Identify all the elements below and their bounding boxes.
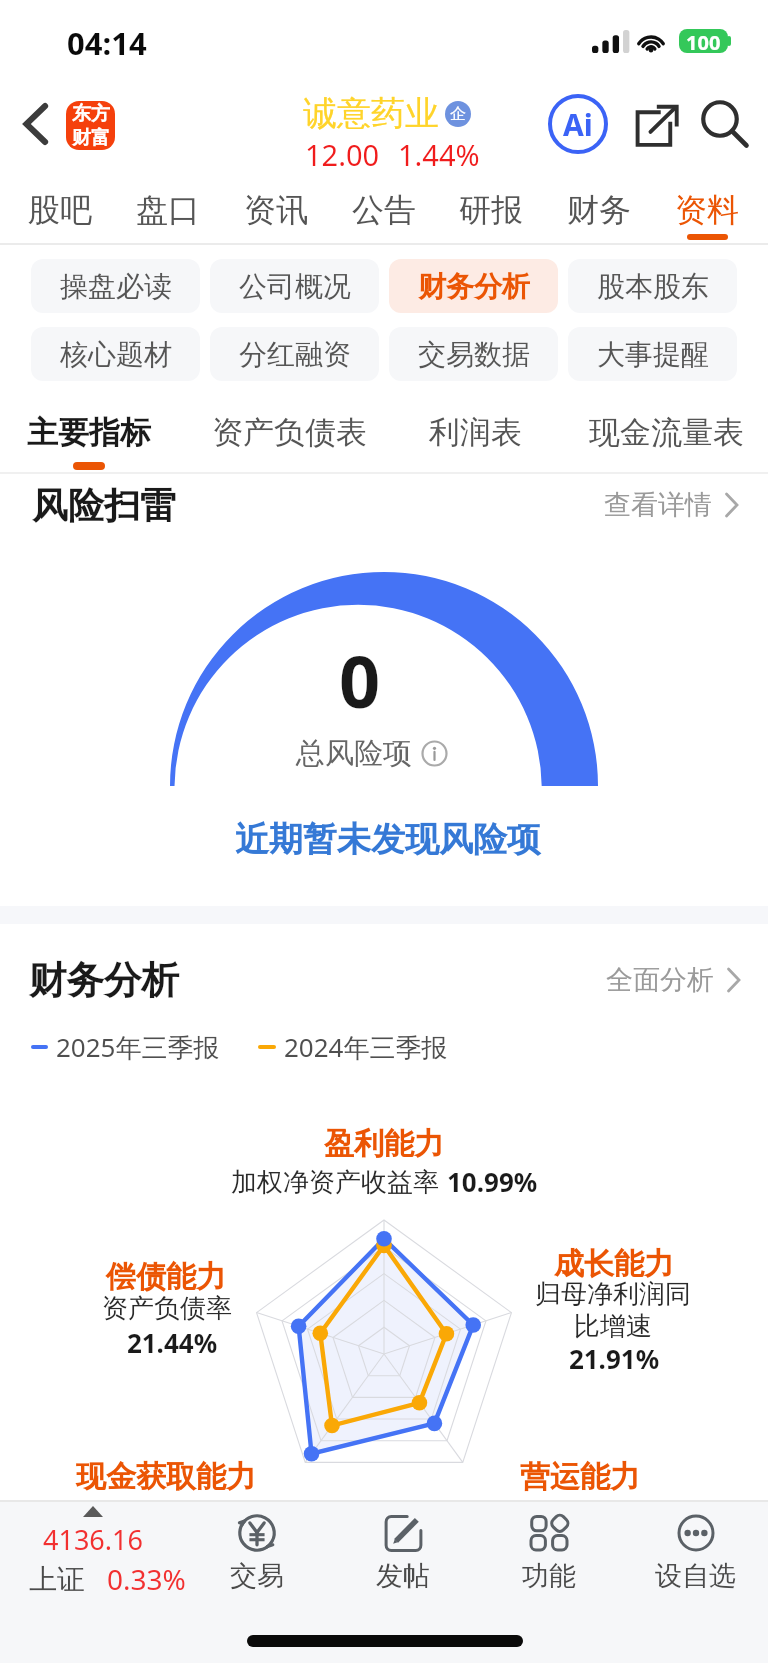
- button[interactable]: 查看详情: [604, 488, 740, 522]
- staticText: 全面分析: [606, 963, 714, 997]
- staticText: 财富: [72, 126, 110, 150]
- staticText: 营运能力: [490, 1458, 670, 1496]
- button[interactable]: AI assistant: [545, 91, 611, 157]
- staticText: 发帖: [376, 1559, 430, 1593]
- staticText: 归母净利润同: [523, 1278, 703, 1311]
- staticText: 100: [686, 29, 721, 53]
- staticText: 企: [450, 104, 466, 124]
- staticText: 功能: [522, 1559, 576, 1593]
- button[interactable]: 大事提醒: [568, 327, 737, 381]
- staticText: 0: [339, 631, 381, 729]
- button[interactable]: 全面分析: [606, 963, 742, 997]
- staticText: 分红融资: [239, 337, 351, 372]
- staticText: 资产负债表: [212, 413, 367, 452]
- button[interactable]: 资产负债表: [209, 407, 369, 479]
- staticText: 12.00: [305, 135, 380, 174]
- staticText: 加权净资产收益率: [231, 1166, 439, 1199]
- button[interactable]: 分红融资: [210, 327, 379, 381]
- staticText: 诚意药业: [303, 92, 439, 135]
- staticText: 21.91%: [524, 1341, 704, 1376]
- button[interactable]: 公告: [332, 182, 436, 246]
- staticText: 21.44%: [82, 1325, 262, 1360]
- button[interactable]: 资讯: [224, 182, 328, 246]
- button[interactable]: 交易数据: [389, 327, 558, 381]
- staticText: 查看详情: [604, 488, 712, 522]
- staticText: 盘口: [136, 190, 200, 230]
- staticText: 盈利能力: [0, 1125, 768, 1163]
- button[interactable]: 财务分析: [389, 259, 558, 313]
- staticText: 研报: [459, 190, 523, 230]
- staticText: 设自选: [655, 1559, 736, 1593]
- button[interactable]: 现金流量表: [586, 407, 746, 479]
- button[interactable]: 4136.16: [0, 1502, 184, 1602]
- button[interactable]: 研报: [439, 182, 543, 246]
- button[interactable]: 主要指标: [9, 407, 169, 479]
- staticText: Ai: [563, 104, 593, 145]
- button[interactable]: Share: [623, 93, 689, 159]
- staticText: 核心题材: [60, 337, 172, 372]
- staticText: 财务分析: [29, 957, 179, 1004]
- staticText: 比增速: [523, 1310, 703, 1343]
- staticText: 1.44%: [398, 135, 480, 174]
- staticText: 0.33%: [107, 1560, 186, 1598]
- staticText: 公告: [352, 190, 416, 230]
- staticText: 10.99%: [447, 1164, 538, 1199]
- staticText: 成长能力: [524, 1245, 704, 1283]
- button[interactable]: 财务: [547, 182, 651, 246]
- button[interactable]: 股吧: [8, 182, 112, 246]
- button[interactable]: Back: [8, 96, 64, 152]
- button[interactable]: East Money home: [66, 101, 115, 150]
- button[interactable]: 核心题材: [31, 327, 200, 381]
- staticText: 上证: [29, 1562, 85, 1597]
- staticText: 总风险项: [296, 735, 412, 772]
- staticText: 交易: [230, 1559, 284, 1593]
- staticText: 操盘必读: [60, 269, 172, 304]
- staticText: 04:14: [67, 22, 147, 64]
- staticText: 大事提醒: [597, 337, 709, 372]
- staticText: 主要指标: [27, 413, 151, 452]
- staticText: 现金流量表: [589, 413, 744, 452]
- staticText: 风险扫雷: [32, 483, 176, 528]
- staticText: 现金获取能力: [46, 1458, 286, 1496]
- staticText: 4136.16: [43, 1521, 143, 1558]
- button[interactable]: Functions: [476, 1502, 622, 1602]
- staticText: 资料: [675, 190, 739, 230]
- button[interactable]: Watchlist: [622, 1502, 768, 1602]
- staticText: 2025年三季报: [56, 1029, 220, 1065]
- button[interactable]: Post: [330, 1502, 476, 1602]
- staticText: 利润表: [429, 413, 522, 452]
- button[interactable]: 公司概况: [210, 259, 379, 313]
- button[interactable]: Trade: [184, 1502, 330, 1602]
- staticText: 财务分析: [418, 269, 530, 304]
- staticText: 2024年三季报: [284, 1029, 448, 1065]
- staticText: 股吧: [28, 190, 92, 230]
- staticText: 股本股东: [597, 269, 709, 304]
- staticText: 资讯: [244, 190, 308, 230]
- staticText: 财务: [567, 190, 631, 230]
- button[interactable]: 资料: [655, 182, 759, 246]
- button[interactable]: 股本股东: [568, 259, 737, 313]
- button[interactable]: 利润表: [395, 407, 555, 479]
- staticText: 资产负债率: [77, 1292, 257, 1325]
- staticText: 公司概况: [239, 269, 351, 304]
- staticText: 东方: [72, 102, 110, 126]
- staticText: 偿债能力: [76, 1258, 256, 1296]
- button[interactable]: 盘口: [116, 182, 220, 246]
- staticText: 交易数据: [418, 337, 530, 372]
- staticText: 近期暂未发现风险项: [235, 818, 541, 861]
- button[interactable]: Search: [692, 91, 758, 157]
- button[interactable]: 操盘必读: [31, 259, 200, 313]
